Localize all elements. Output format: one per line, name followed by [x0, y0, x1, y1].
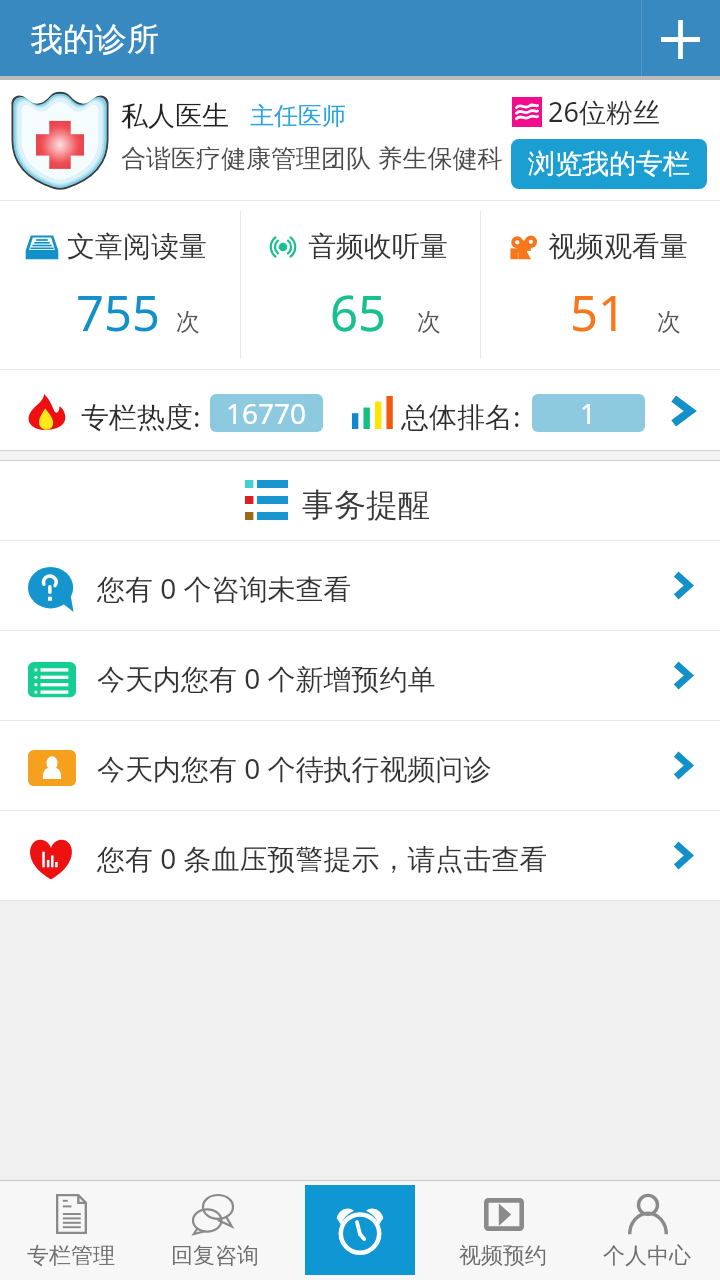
staticText: 主任医师 [250, 101, 346, 131]
button[interactable]: 音频收听量 [241, 201, 480, 369]
staticText: 16770 [226, 394, 307, 432]
staticText: 26位粉丝 [548, 93, 660, 130]
button[interactable]: 您有 0 个咨询未查看 [0, 541, 720, 630]
button[interactable]: 专栏管理 [0, 1181, 144, 1280]
staticText: 个人中心 [603, 1242, 691, 1270]
button[interactable]: Add [641, 0, 720, 76]
staticText: 您有 0 条血压预警提示，请点击查看 [97, 839, 548, 877]
staticText: 755 [76, 279, 161, 346]
button[interactable]: 今天内您有 0 个待执行视频问诊 [0, 721, 720, 810]
staticText: 您有 0 个咨询未查看 [97, 569, 352, 607]
staticText: 视频观看量 [548, 229, 688, 264]
staticText: 浏览我的专栏 [528, 147, 690, 181]
button[interactable]: 您有 0 条血压预警提示，请点击查看 [0, 811, 720, 900]
staticText: 专栏管理 [27, 1242, 115, 1270]
staticText: 次 [417, 307, 441, 337]
button[interactable]: 专栏热度: [0, 370, 720, 450]
staticText: 文章阅读量 [67, 229, 207, 264]
staticText: 回复咨询 [171, 1242, 259, 1270]
staticText: 65 [330, 279, 387, 346]
button[interactable]: 事务提醒 [288, 1181, 432, 1280]
staticText: 合谐医疗健康管理团队 养生保健科 [121, 140, 503, 174]
button[interactable]: 文章阅读量 [0, 201, 240, 369]
button[interactable]: 视频预约 [432, 1181, 576, 1280]
staticText: 事务提醒 [302, 485, 430, 525]
staticText: 今天内您有 0 个待执行视频问诊 [97, 749, 492, 787]
staticText: 私人医生 [121, 99, 229, 133]
button[interactable]: 回复咨询 [144, 1181, 288, 1280]
staticText: 我的诊所 [31, 19, 159, 59]
button[interactable]: 浏览我的专栏 [511, 139, 707, 189]
staticText: 专栏热度: [81, 397, 201, 435]
staticText: 音频收听量 [308, 229, 448, 264]
staticText: 次 [657, 307, 681, 337]
staticText: 今天内您有 0 个新增预约单 [97, 659, 436, 697]
staticText: 视频预约 [459, 1242, 547, 1270]
staticText: 1 [580, 394, 597, 432]
staticText: 51 [570, 279, 627, 346]
button[interactable]: 今天内您有 0 个新增预约单 [0, 631, 720, 720]
button[interactable]: 个人中心 [576, 1181, 720, 1280]
button[interactable]: 视频观看量 [481, 201, 720, 369]
staticText: 总体排名: [401, 397, 521, 435]
staticText: 次 [176, 307, 200, 337]
